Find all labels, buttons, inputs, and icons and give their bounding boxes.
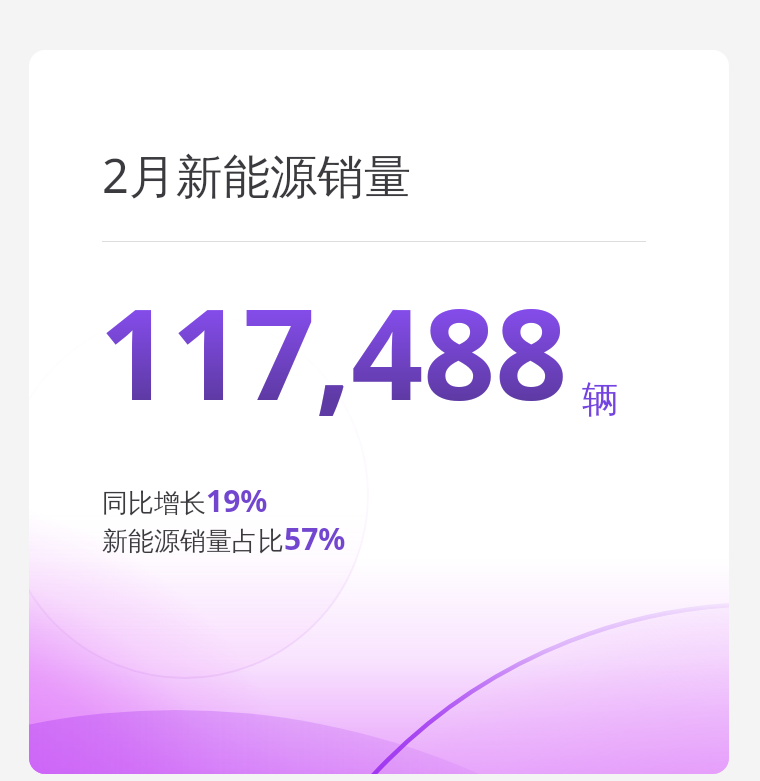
staticText: 2月新能源销量 [102, 143, 411, 207]
staticText: 新能源销量占比57% [102, 518, 346, 559]
staticText: 117,488 [99, 265, 568, 437]
staticText: 辆 [582, 376, 619, 423]
staticText: 同比增长19% [102, 480, 268, 521]
